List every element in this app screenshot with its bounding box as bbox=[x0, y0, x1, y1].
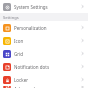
staticText: Notification dots bbox=[14, 64, 50, 70]
staticText: Grid bbox=[14, 51, 24, 57]
staticText: Advanced bbox=[14, 86, 35, 88]
button[interactable]: Personalization bbox=[0, 21, 88, 34]
staticText: Settings bbox=[3, 15, 19, 20]
other: Open System Settings bbox=[80, 4, 85, 9]
button[interactable]: Locker bbox=[0, 73, 88, 86]
other: Open Advanced bbox=[80, 86, 85, 88]
other: Open Personalization bbox=[80, 25, 85, 30]
other: Open Icon bbox=[80, 38, 85, 43]
button[interactable]: System Settings bbox=[0, 0, 88, 13]
button[interactable]: Notification dots bbox=[0, 60, 88, 73]
other: Open Locker bbox=[80, 77, 85, 82]
staticText: System Settings bbox=[14, 4, 48, 10]
staticText: Personalization bbox=[14, 25, 47, 31]
button[interactable]: Grid bbox=[0, 47, 88, 60]
other: Open Notification dots bbox=[80, 64, 85, 69]
button[interactable]: Advanced bbox=[0, 86, 88, 88]
other: Open Grid bbox=[80, 51, 85, 56]
staticText: Icon bbox=[14, 38, 24, 44]
staticText: Locker bbox=[14, 77, 29, 83]
button[interactable]: Icon bbox=[0, 34, 88, 47]
